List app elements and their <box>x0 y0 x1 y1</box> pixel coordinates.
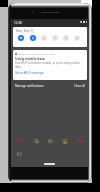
staticText: Your Wi-Fi connection is weak, so you're… <box>15 61 80 65</box>
staticText: Mon, Nov 11 <box>16 29 34 33</box>
staticText: Project Fi • Network Tools • now <box>18 52 56 55</box>
button[interactable]: Manage notifications <box>15 84 44 88</box>
button[interactable]: Quick setting <box>74 35 80 41</box>
button[interactable]: Quick setting <box>18 35 24 41</box>
staticText: Using mobile data <box>15 56 45 60</box>
button[interactable]: Quick setting <box>41 35 47 41</box>
button[interactable]: Quick setting <box>30 35 36 41</box>
staticText: data. <box>15 65 22 69</box>
button[interactable]: Quick setting <box>63 35 69 41</box>
button[interactable]: Clear all <box>74 84 85 88</box>
button[interactable]: Project Fi • Network Tools • now <box>13 50 87 80</box>
staticText: Clear all <box>74 84 85 88</box>
staticText: 12:30 <box>14 21 23 25</box>
staticText: Go to Wi-Fi settings <box>15 71 44 75</box>
button[interactable]: Quick setting <box>52 35 58 41</box>
staticText: Manage notifications <box>15 84 44 88</box>
